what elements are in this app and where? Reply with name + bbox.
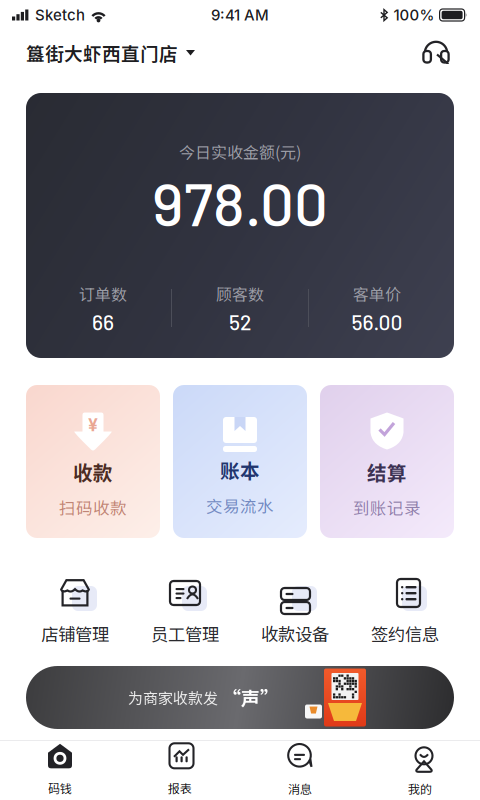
button[interactable]: 店铺管理 <box>20 576 130 646</box>
button[interactable]: 码钱 <box>0 736 120 800</box>
staticText: 店铺管理 <box>41 621 109 646</box>
staticText: 扫码收款 <box>59 495 127 519</box>
staticText: 报表 <box>168 779 192 797</box>
staticText: 收款设备 <box>261 621 329 646</box>
staticText: 顾客数 <box>216 282 264 305</box>
button[interactable]: 签约信息 <box>350 576 460 646</box>
button[interactable]: 报表 <box>120 736 240 800</box>
staticText: 978.00 <box>152 166 328 238</box>
staticText: 收款 <box>73 458 113 486</box>
staticText: 到账记录 <box>353 495 421 519</box>
staticText: 9:41 AM <box>211 6 269 24</box>
staticText: 今日实收金额(元) <box>179 140 301 163</box>
button[interactable]: ¥ <box>26 385 160 538</box>
staticText: 52 <box>229 309 251 334</box>
staticText: 结算 <box>367 458 407 486</box>
staticText: 为商家收款发 <box>128 687 218 708</box>
button[interactable]: 结算 <box>320 385 454 538</box>
button[interactable]: 员工管理 <box>130 576 240 646</box>
staticText: 码钱 <box>48 779 72 797</box>
staticText: 66 <box>92 309 114 334</box>
staticText: 簋街大虾西直门店 <box>26 39 178 66</box>
staticText: 客单价 <box>353 282 401 305</box>
staticText: 交易流水 <box>206 493 274 517</box>
staticText: “声” <box>222 684 279 711</box>
button[interactable]: 我的 <box>360 736 480 800</box>
staticText: 100% <box>394 6 435 24</box>
staticText: Sketch <box>35 6 85 24</box>
staticText: 我的 <box>408 780 432 797</box>
button[interactable]: 消息 <box>240 736 360 800</box>
button[interactable]: 联系客服 <box>418 36 454 70</box>
button[interactable]: 账本 <box>173 385 307 538</box>
staticText: 员工管理 <box>151 621 219 646</box>
staticText: 签约信息 <box>371 621 439 646</box>
button[interactable]: 为商家收款发 <box>26 666 454 729</box>
staticText: 消息 <box>288 780 312 797</box>
staticText: ¥ <box>88 414 98 435</box>
button[interactable]: 簋街大虾西直门店 <box>26 33 195 72</box>
staticText: 账本 <box>220 456 260 484</box>
staticText: 订单数 <box>79 282 127 305</box>
staticText: 56.00 <box>351 309 402 334</box>
button[interactable]: 收款设备 <box>240 576 350 646</box>
